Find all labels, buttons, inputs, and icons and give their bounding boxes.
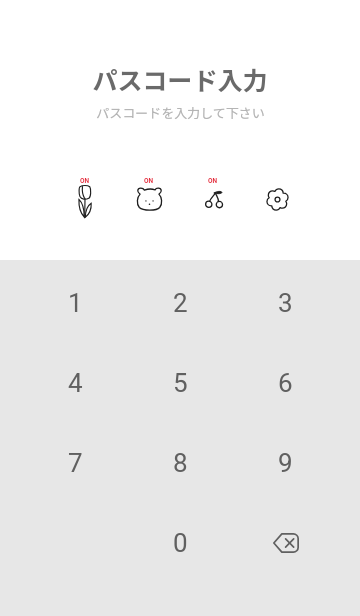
button[interactable]: 1 (22, 263, 128, 343)
button[interactable]: 4 (22, 343, 128, 423)
button[interactable]: 9 (233, 423, 338, 503)
staticText: パスコードを入力して下さい (96, 103, 265, 122)
staticText: 2 (173, 288, 188, 318)
staticText: 3 (278, 288, 293, 318)
button[interactable]: 3 (233, 263, 338, 343)
staticText: パスコード入力 (92, 61, 268, 97)
button[interactable]: 0 (128, 503, 233, 583)
staticText: 5 (173, 368, 188, 398)
staticText: 8 (173, 448, 188, 478)
staticText: ON (80, 177, 90, 185)
staticText: ON (144, 177, 154, 185)
button[interactable]: 8 (128, 423, 233, 503)
staticText: 0 (173, 528, 188, 558)
staticText: 1 (68, 288, 83, 318)
button[interactable]: 7 (22, 423, 128, 503)
staticText: 9 (278, 448, 293, 478)
button[interactable]: 6 (233, 343, 338, 423)
button[interactable]: 5 (128, 343, 233, 423)
staticText: 4 (68, 368, 83, 398)
staticText: 6 (278, 368, 293, 398)
staticText: 7 (68, 448, 83, 478)
staticText: ON (208, 177, 218, 185)
button[interactable]: 2 (128, 263, 233, 343)
button[interactable]: Delete (233, 503, 338, 583)
